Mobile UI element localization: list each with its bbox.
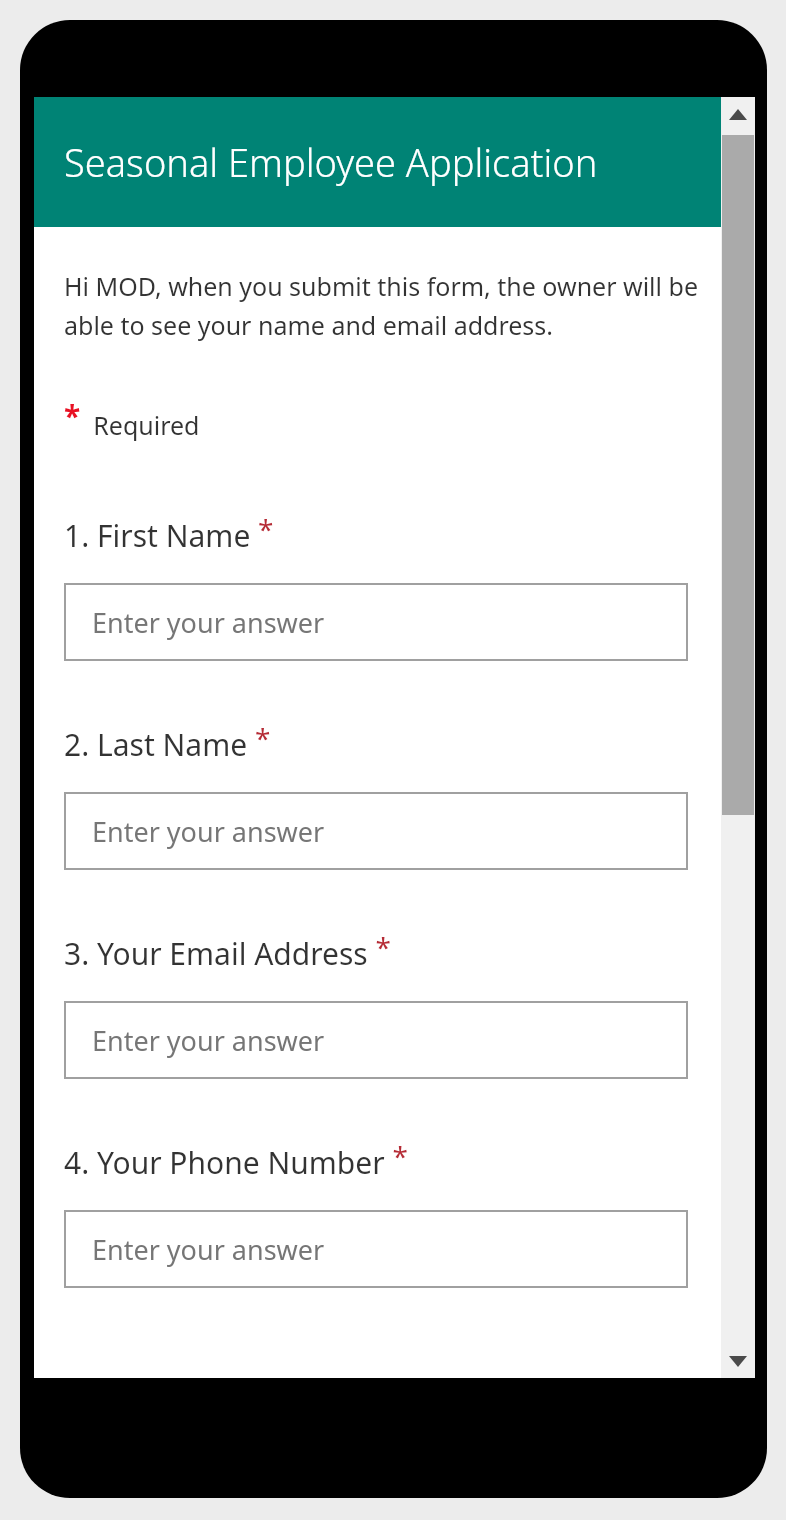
button[interactable]: Enter your answer — [64, 792, 688, 870]
staticText: Enter your answer — [92, 1231, 325, 1268]
button[interactable]: 1. First Name * — [64, 510, 721, 555]
staticText: Hi MOD, when you submit this form, the o… — [64, 269, 715, 343]
button[interactable]: 4. Your Phone Number * — [64, 1137, 721, 1182]
staticText: * Required — [64, 395, 200, 442]
staticText: 4. Your Phone Number * — [64, 1137, 408, 1182]
staticText: 1. First Name * — [64, 510, 274, 555]
staticText: Seasonal Employee Application — [64, 136, 598, 188]
staticText: Enter your answer — [92, 813, 325, 850]
button[interactable]: 3. Your Email Address * — [64, 928, 721, 973]
button[interactable]: Enter your answer — [64, 1210, 688, 1288]
button[interactable]: Enter your answer — [64, 583, 688, 661]
staticText: Enter your answer — [92, 1022, 325, 1059]
button[interactable]: Scroll down — [721, 1344, 755, 1378]
staticText: 3. Your Email Address * — [64, 928, 391, 973]
button[interactable]: Scroll up — [721, 97, 755, 131]
staticText: Enter your answer — [92, 604, 325, 641]
button[interactable]: 2. Last Name * — [64, 719, 721, 764]
staticText: 2. Last Name * — [64, 719, 271, 764]
button[interactable]: Enter your answer — [64, 1001, 688, 1079]
